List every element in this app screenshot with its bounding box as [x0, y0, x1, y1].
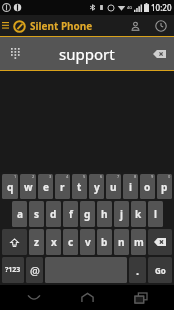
staticText: j: [120, 207, 123, 221]
button[interactable]: e: [38, 174, 53, 199]
staticText: n: [118, 235, 125, 249]
staticText: 10:20: [151, 2, 172, 13]
staticText: x: [51, 235, 57, 249]
button[interactable]: j: [114, 201, 129, 227]
button[interactable]: c: [63, 229, 78, 255]
button[interactable]: Shift: [2, 229, 27, 255]
staticText: 9: [151, 174, 154, 179]
staticText: b: [101, 235, 108, 249]
button[interactable]: Contacts: [122, 15, 148, 37]
button[interactable]: Go: [148, 257, 172, 283]
button[interactable]: v: [80, 229, 95, 255]
staticText: u: [110, 180, 117, 194]
staticText: 4: [66, 174, 69, 179]
staticText: i: [129, 180, 132, 194]
button[interactable]: At sign: [26, 257, 43, 283]
staticText: t: [77, 180, 82, 194]
button[interactable]: support: [0, 37, 174, 70]
button[interactable]: t: [72, 174, 87, 199]
button[interactable]: b: [97, 229, 112, 255]
staticText: z: [34, 235, 39, 249]
staticText: h: [101, 207, 108, 221]
button[interactable]: f: [63, 201, 78, 227]
button[interactable]: Home: [67, 285, 107, 310]
button[interactable]: Period: [129, 257, 146, 283]
button[interactable]: z: [29, 229, 44, 255]
staticText: y: [94, 180, 100, 194]
button[interactable]: Recent apps: [121, 285, 161, 310]
staticText: w: [24, 180, 33, 194]
button[interactable]: p: [157, 174, 172, 199]
staticText: k: [135, 207, 142, 221]
staticText: s: [34, 207, 40, 221]
staticText: 6: [100, 174, 103, 179]
staticText: m: [134, 235, 144, 249]
staticText: o: [144, 180, 151, 194]
button[interactable]: k: [131, 201, 146, 227]
button[interactable]: n: [114, 229, 129, 255]
button[interactable]: Call history: [148, 15, 174, 37]
button[interactable]: u: [106, 174, 121, 199]
staticText: .: [136, 263, 140, 278]
staticText: f: [69, 207, 73, 221]
button[interactable]: l: [148, 201, 163, 227]
staticText: p: [161, 180, 168, 194]
button[interactable]: s: [29, 201, 44, 227]
staticText: 4G: [127, 5, 133, 10]
staticText: c: [68, 235, 74, 249]
staticText: 0: [168, 174, 171, 179]
button[interactable]: r: [55, 174, 70, 199]
button[interactable]: w: [20, 174, 36, 199]
button[interactable]: Dialpad: [0, 37, 30, 70]
staticText: a: [17, 207, 23, 221]
button[interactable]: Silent Phone logo: [10, 17, 28, 35]
button[interactable]: Symbols: [2, 257, 24, 283]
button[interactable]: m: [131, 229, 146, 255]
staticText: 8: [134, 174, 137, 179]
staticText: q: [7, 180, 14, 194]
staticText: 7: [117, 174, 120, 179]
staticText: r: [60, 180, 65, 194]
button[interactable]: h: [97, 201, 112, 227]
button[interactable]: y: [89, 174, 104, 199]
staticText: @: [30, 263, 40, 278]
button[interactable]: Delete: [148, 229, 172, 255]
staticText: g: [84, 207, 91, 221]
staticText: 3: [49, 174, 52, 179]
staticText: Go: [155, 265, 166, 276]
button[interactable]: d: [46, 201, 61, 227]
button[interactable]: q: [2, 174, 18, 199]
button[interactable]: Menu: [0, 15, 10, 37]
staticText: e: [43, 180, 49, 194]
staticText: Silent Phone: [30, 19, 93, 33]
staticText: v: [85, 235, 91, 249]
staticText: 5: [83, 174, 86, 179]
button[interactable]: i: [123, 174, 138, 199]
button[interactable]: x: [46, 229, 61, 255]
staticText: 2: [32, 174, 35, 179]
staticText: 1: [14, 174, 17, 179]
button[interactable]: g: [80, 201, 95, 227]
button[interactable]: Back: [14, 285, 54, 310]
staticText: d: [50, 207, 57, 221]
button[interactable]: o: [140, 174, 155, 199]
button[interactable]: a: [12, 201, 27, 227]
staticText: ?123: [5, 265, 21, 275]
staticText: support: [59, 44, 115, 64]
button[interactable]: Backspace: [144, 37, 174, 70]
staticText: l: [154, 207, 157, 221]
